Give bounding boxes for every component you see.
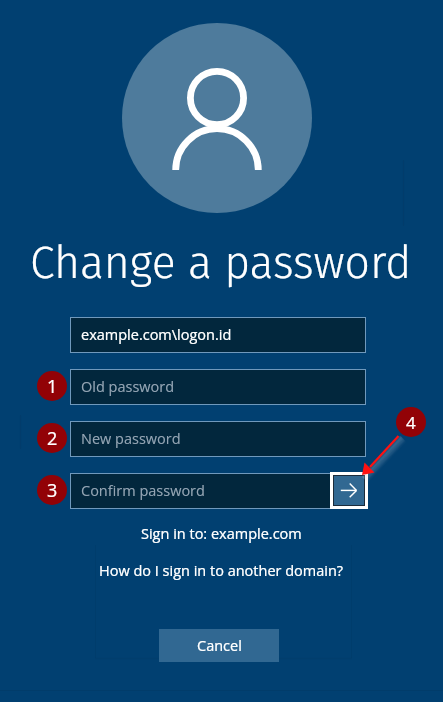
button[interactable]: example.com\logon.id: [71, 318, 365, 352]
button[interactable]: Submit: [334, 476, 364, 505]
button[interactable]: Old password: [71, 370, 365, 404]
staticText: Old password: [81, 377, 175, 397]
staticText: Change a password: [30, 236, 412, 289]
button[interactable]: How do I sign in to another domain?: [99, 561, 344, 581]
button[interactable]: Confirm password: [71, 474, 365, 508]
staticText: 4: [406, 411, 416, 434]
staticText: 2: [47, 426, 58, 451]
staticText: example.com\logon.id: [81, 325, 232, 345]
staticText: Confirm password: [81, 481, 205, 501]
staticText: 1: [47, 374, 58, 399]
staticText: Cancel: [197, 636, 242, 656]
staticText: Sign in to: example.com: [141, 524, 302, 544]
button[interactable]: Cancel: [159, 629, 279, 662]
staticText: New password: [81, 429, 181, 449]
button[interactable]: New password: [71, 422, 365, 456]
staticText: 3: [47, 478, 58, 503]
